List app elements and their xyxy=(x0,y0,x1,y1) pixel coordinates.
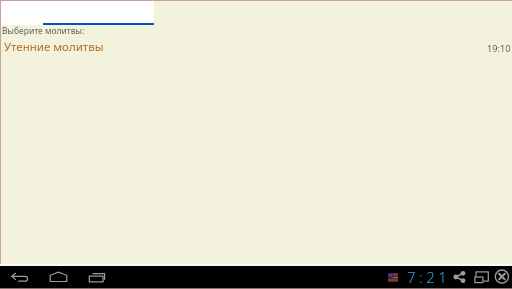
button[interactable]: Share xyxy=(452,269,468,285)
button[interactable]: Выберите молитвы xyxy=(1,1,154,25)
staticText: Утенние молитвы xyxy=(4,39,104,53)
button[interactable]: Утенние молитвы xyxy=(0,39,512,53)
staticText: 7:21 xyxy=(407,267,451,287)
button[interactable]: Close xyxy=(493,267,511,285)
button[interactable]: Home xyxy=(47,268,69,286)
staticText: Выберите молитвы: xyxy=(2,25,85,37)
button[interactable]: Recent apps xyxy=(86,268,108,286)
other: Keyboard layout xyxy=(388,273,398,282)
button[interactable]: Back xyxy=(8,268,30,286)
staticText: 19:10 xyxy=(487,42,511,55)
button[interactable]: Screen mirroring xyxy=(472,269,490,285)
